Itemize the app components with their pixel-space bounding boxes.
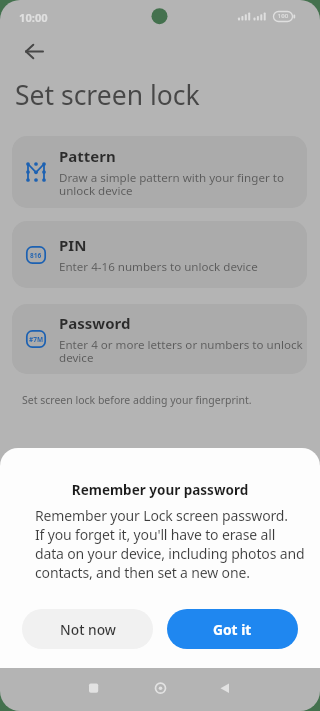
staticText: Remember your password <box>0 481 320 499</box>
button[interactable]: 816 <box>12 221 307 288</box>
staticText: Remember your Lock screen password. If y… <box>35 506 305 582</box>
staticText: Set screen lock before adding your finge… <box>22 393 252 407</box>
staticText: Enter 4-16 numbers to unlock device <box>59 259 258 275</box>
button[interactable] <box>80 678 108 702</box>
button[interactable] <box>147 678 175 702</box>
staticText: PIN <box>59 235 87 255</box>
button[interactable]: Not now <box>22 609 153 649</box>
staticText: Enter 4 or more letters or numbers to un… <box>59 337 303 366</box>
button[interactable]: Pattern <box>12 136 307 208</box>
staticText: 10:00 <box>19 10 48 25</box>
staticText: Not now <box>60 620 116 639</box>
staticText: 816 <box>30 251 42 260</box>
button[interactable] <box>212 678 240 702</box>
staticText: Pattern <box>59 146 116 166</box>
staticText: Set screen lock <box>15 77 200 113</box>
button[interactable]: Got it <box>167 609 298 649</box>
button[interactable] <box>18 38 50 64</box>
staticText: Password <box>59 313 131 333</box>
staticText: Got it <box>213 620 252 639</box>
staticText: Draw a simple pattern with your finger t… <box>59 170 284 199</box>
staticText: 100 <box>277 12 289 20</box>
staticText: #7M <box>29 335 44 344</box>
button[interactable]: #7M <box>12 304 307 374</box>
